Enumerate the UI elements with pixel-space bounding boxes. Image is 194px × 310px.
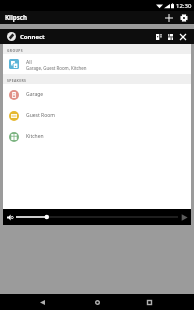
staticText: Garage, Guest Room, Kitchen xyxy=(26,65,87,71)
staticText: All xyxy=(26,59,32,66)
button[interactable]: Guest Room xyxy=(3,105,191,126)
staticText: Garage xyxy=(26,91,44,98)
button[interactable]: Back xyxy=(35,295,49,309)
staticText: Connect xyxy=(20,33,45,41)
button[interactable]: Kitchen xyxy=(3,126,191,147)
staticText: GROUPS xyxy=(7,48,23,53)
button[interactable]: Settings xyxy=(177,11,190,24)
button[interactable]: All xyxy=(3,54,191,74)
button[interactable]: Close xyxy=(179,33,186,40)
button[interactable]: Speaker list xyxy=(167,33,174,40)
button[interactable]: Home xyxy=(90,295,104,309)
button[interactable]: Open player xyxy=(179,212,189,222)
staticText: SPEAKERS xyxy=(7,78,27,83)
button[interactable]: Recent apps xyxy=(142,295,156,309)
staticText: Kitchen xyxy=(26,133,44,140)
button[interactable]: Volume xyxy=(5,212,16,223)
staticText: 12:30 xyxy=(176,2,192,10)
button[interactable]: Garage xyxy=(3,84,191,105)
staticText: Guest Room xyxy=(26,112,55,119)
button[interactable]: Add speaker xyxy=(162,11,175,24)
button[interactable]: Group speakers xyxy=(155,33,162,40)
staticText: Klipsch xyxy=(5,13,28,21)
